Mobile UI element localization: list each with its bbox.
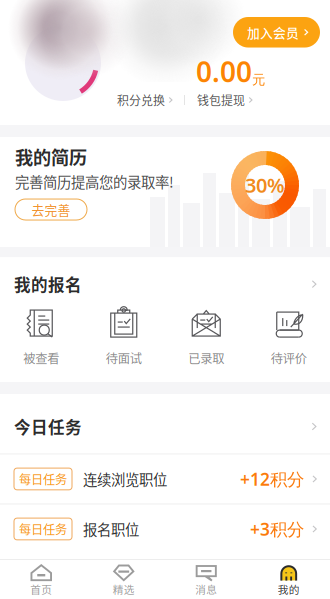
button[interactable]: 每日任务 — [0, 504, 330, 553]
staticText: 加入会员 — [247, 23, 299, 41]
staticText: 待评价 — [271, 349, 307, 367]
staticText: 被查看 — [23, 349, 59, 367]
staticText: +12积分 — [240, 467, 304, 490]
staticText: 连续浏览职位 — [83, 468, 167, 489]
button[interactable]: 积分兑换 — [117, 91, 175, 109]
staticText: 消息 — [195, 581, 217, 597]
staticText: 30% — [245, 172, 285, 198]
staticText: 每日任务 — [19, 520, 67, 538]
staticText: 0.00 — [196, 53, 252, 90]
button[interactable]: 消息 — [165, 560, 247, 599]
staticText: 完善简历提高您的录取率! — [15, 171, 174, 192]
staticText: 精选 — [113, 581, 135, 597]
button[interactable]: 去完善 — [15, 199, 87, 220]
staticText: 积分兑换 — [117, 91, 165, 109]
staticText: 今日任务 — [14, 414, 82, 438]
staticText: 我的报名 — [14, 272, 82, 296]
staticText: 报名职位 — [83, 519, 139, 539]
button[interactable]: 精选 — [82, 560, 165, 599]
button[interactable]: 今日任务 — [0, 399, 330, 453]
button[interactable]: 我的 — [247, 560, 330, 599]
staticText: 去完善 — [31, 200, 70, 219]
staticText: 待面试 — [106, 349, 142, 367]
staticText: 钱包提现 — [197, 91, 245, 109]
button[interactable]: 已录取 — [165, 306, 247, 367]
button[interactable]: 待评价 — [247, 306, 330, 367]
staticText: 首页 — [30, 581, 52, 597]
button[interactable]: 首页 — [0, 560, 82, 599]
staticText: +3积分 — [250, 517, 304, 540]
staticText: 我的 — [278, 581, 300, 597]
button[interactable]: 每日任务 — [0, 454, 330, 503]
button[interactable]: 加入会员 — [233, 17, 320, 47]
staticText: 每日任务 — [19, 470, 67, 488]
button[interactable]: 被查看 — [0, 306, 82, 367]
staticText: 元 — [252, 72, 265, 88]
staticText: 已录取 — [188, 349, 224, 367]
staticText: 我的简历 — [15, 143, 87, 170]
button[interactable]: 待面试 — [82, 306, 165, 367]
button[interactable]: 钱包提现 — [197, 91, 255, 109]
button[interactable]: 我的报名 — [0, 257, 330, 306]
